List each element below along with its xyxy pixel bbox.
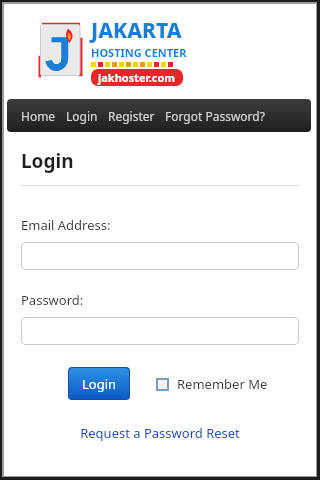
staticText: HOSTING CENTER	[91, 45, 187, 60]
button[interactable]: Request a Password Reset	[76, 420, 244, 446]
button[interactable]: Register	[103, 99, 160, 132]
staticText: Email Address:	[21, 216, 111, 234]
staticText: Login	[66, 108, 98, 124]
button[interactable]: Login	[61, 99, 103, 132]
staticText: Password:	[21, 291, 84, 309]
button[interactable]: Password	[21, 317, 299, 345]
staticText: jakhoster.com	[98, 70, 176, 85]
button[interactable]: Email Address	[21, 242, 299, 270]
staticText: Home	[21, 108, 56, 124]
button[interactable]: Remember Me	[156, 375, 268, 393]
staticText: Register	[108, 108, 155, 124]
button[interactable]: Forgot Password?	[160, 99, 270, 132]
staticText: Forgot Password?	[165, 108, 265, 124]
staticText: Request a Password Reset	[80, 424, 240, 442]
staticText: Login	[82, 375, 117, 393]
staticText: JAKARTA	[91, 16, 182, 45]
staticText: Login	[21, 148, 74, 174]
staticText: Remember Me	[177, 375, 268, 393]
button[interactable]: Login	[68, 367, 130, 400]
button[interactable]: Home	[16, 99, 61, 132]
